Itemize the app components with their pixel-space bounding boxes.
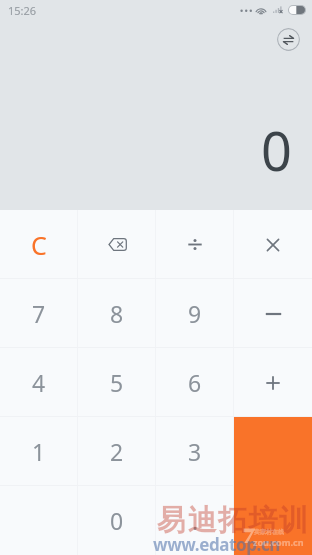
staticText: 0 [110, 505, 124, 536]
button[interactable]: Backspace [78, 210, 156, 279]
staticText: 2 [110, 436, 124, 467]
button[interactable]: 9 [156, 279, 234, 348]
staticText: 6 [188, 367, 202, 398]
staticText: 15:26 [8, 3, 37, 18]
button[interactable]: Plus [234, 348, 312, 417]
button[interactable]: 3 [156, 417, 234, 486]
staticText: . [192, 505, 199, 536]
staticText: zou.com.cn [253, 536, 304, 548]
button[interactable]: 2 [78, 417, 156, 486]
staticText: 卖家村在线 [254, 528, 284, 536]
button[interactable]: 1 [0, 417, 78, 486]
staticText: 1 [32, 436, 46, 467]
button[interactable] [234, 486, 312, 555]
button[interactable]: 8 [78, 279, 156, 348]
staticText: 易迪拓培训 [156, 502, 309, 539]
staticText: 3 [188, 436, 202, 467]
staticText: 7 [32, 298, 46, 329]
button[interactable]: 0 [78, 486, 156, 555]
button[interactable]: 6 [156, 348, 234, 417]
button[interactable]: . [156, 486, 234, 555]
staticText: C [31, 228, 47, 262]
staticText: 4 [32, 367, 46, 398]
button[interactable]: 5 [78, 348, 156, 417]
staticText: www.edatop.cn [153, 533, 280, 555]
button[interactable]: 4 [0, 348, 78, 417]
button[interactable]: 7 [0, 279, 78, 348]
staticText: 0 [261, 113, 292, 187]
button[interactable]: C [0, 210, 78, 279]
button[interactable]: Unit converter [277, 28, 300, 51]
button[interactable]: Equals [234, 417, 312, 555]
staticText: 8 [110, 298, 124, 329]
staticText: 5 [110, 367, 124, 398]
button[interactable]: Minus [234, 279, 312, 348]
staticText: 9 [188, 298, 202, 329]
button[interactable]: Multiply [234, 210, 312, 279]
button[interactable]: Divide [156, 210, 234, 279]
